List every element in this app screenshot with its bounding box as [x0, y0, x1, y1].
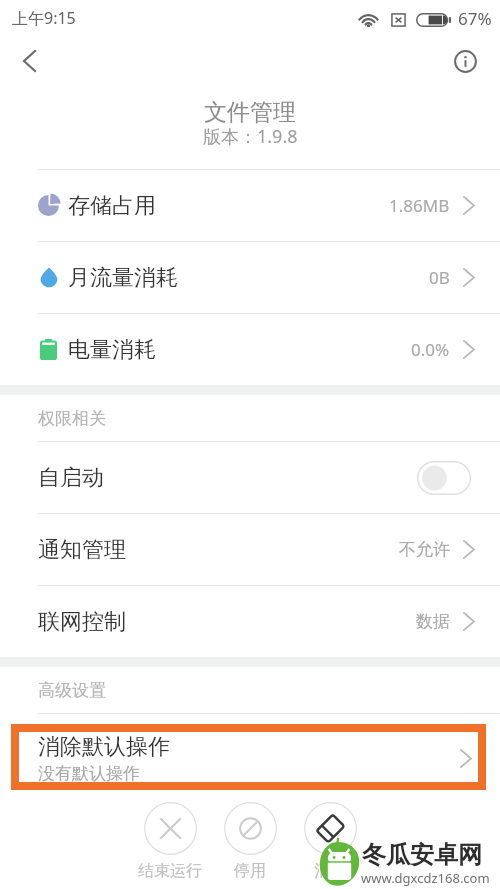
button[interactable]: 联网控制 — [0, 586, 500, 657]
staticText: 权限相关 — [38, 408, 106, 429]
staticText: 电量消耗 — [68, 336, 156, 364]
staticText: 冬瓜安卓网 — [362, 840, 482, 870]
staticText: 版本：1.9.8 — [203, 124, 298, 149]
staticText: www.dgxcdz168.com — [361, 869, 490, 887]
staticText: 上午9:15 — [12, 7, 76, 29]
staticText: 通知管理 — [38, 536, 126, 564]
staticText: 联网控制 — [38, 608, 126, 636]
staticText: 月流量消耗 — [68, 264, 178, 292]
staticText: 高级设置 — [38, 680, 106, 701]
staticText: 文件管理 — [204, 98, 296, 127]
staticText: 1.86MB — [389, 194, 450, 217]
staticText: 消除默认操作 — [38, 733, 170, 761]
staticText: 0.0% — [411, 338, 450, 361]
button[interactable]: App info — [448, 36, 483, 86]
staticText: 自启动 — [38, 464, 104, 492]
staticText: 存储占用 — [68, 192, 156, 220]
button[interactable]: 电量消耗 — [0, 314, 500, 385]
staticText: 不允许 — [399, 539, 450, 560]
button[interactable]: 结束运行 — [130, 790, 210, 881]
staticText: 数据 — [416, 611, 450, 632]
staticText: 67% — [458, 7, 492, 30]
button[interactable]: 消除默认操作 — [0, 714, 500, 790]
button[interactable]: 月流量消耗 — [0, 242, 500, 313]
staticText: 结束运行 — [138, 861, 202, 881]
staticText: 清除 — [314, 861, 346, 881]
staticText: 没有默认操作 — [38, 763, 140, 784]
button[interactable]: 停用 — [210, 790, 290, 881]
button[interactable]: 通知管理 — [0, 514, 500, 585]
button[interactable]: 自启动 — [0, 442, 500, 513]
staticText: 停用 — [234, 861, 266, 881]
staticText: 0B — [429, 266, 450, 289]
button[interactable]: Back — [0, 36, 58, 86]
button[interactable]: 清除 — [290, 790, 370, 881]
button[interactable]: 存储占用 — [0, 170, 500, 241]
